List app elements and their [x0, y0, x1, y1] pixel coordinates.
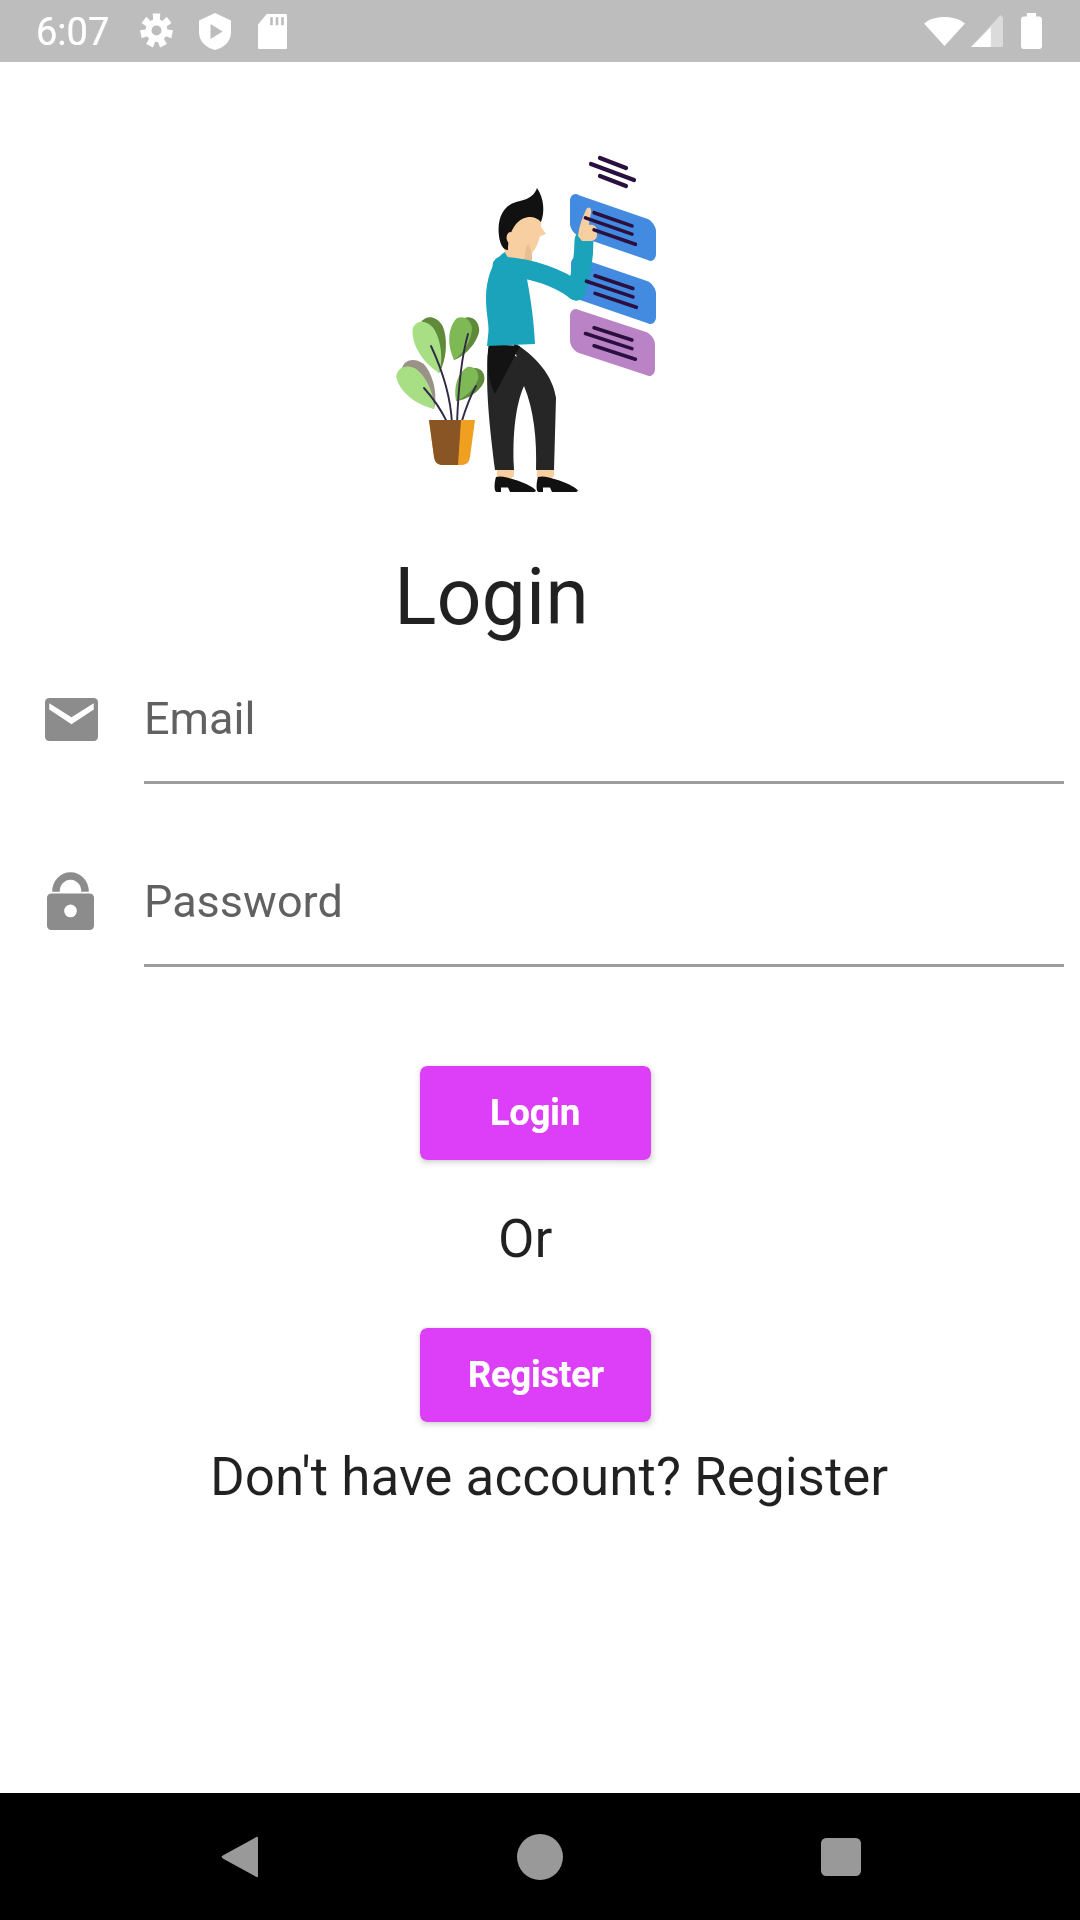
staticText: 6:07: [36, 10, 110, 55]
button[interactable]: Recents: [782, 1805, 900, 1909]
staticText: Login: [394, 551, 589, 644]
staticText: Login: [490, 1092, 581, 1134]
button[interactable]: Login: [420, 1066, 651, 1160]
staticText: Or: [498, 1208, 553, 1270]
staticText: Password: [144, 875, 343, 928]
button[interactable]: Home: [480, 1805, 600, 1909]
staticText: Email: [144, 692, 256, 745]
staticText: Register: [468, 1354, 604, 1396]
staticText: Don't have account? Register: [210, 1446, 889, 1508]
button[interactable]: Register: [420, 1328, 651, 1422]
button[interactable]: Back: [180, 1805, 298, 1909]
